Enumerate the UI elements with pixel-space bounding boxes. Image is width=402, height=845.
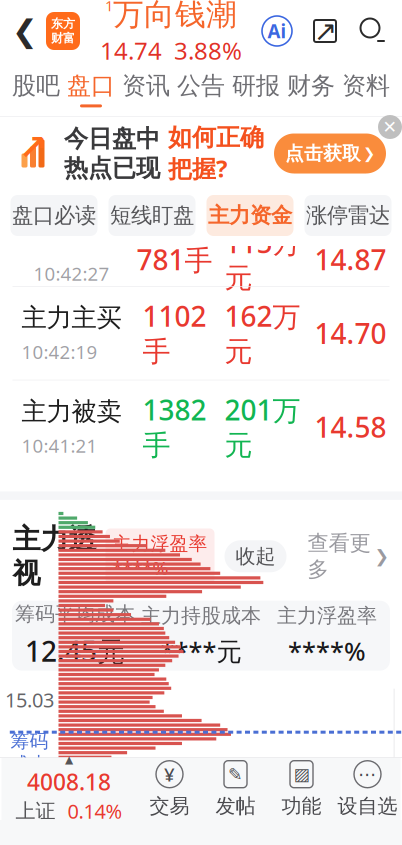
button[interactable]: 资讯 xyxy=(118,62,173,116)
button[interactable]: 东方财富 xyxy=(46,12,80,50)
button[interactable]: 收起 xyxy=(224,540,286,572)
staticText: 781手 xyxy=(136,241,212,278)
staticText: 主力浮盈率 xyxy=(277,604,377,628)
staticText: Ai xyxy=(267,19,286,43)
staticText: 15.03 xyxy=(5,686,54,713)
staticText: 研报 xyxy=(232,71,280,100)
staticText: ▲ xyxy=(65,754,73,766)
staticText: 115万元 xyxy=(224,224,300,295)
button[interactable]: 分享 xyxy=(310,16,340,46)
staticText: 主力持股成本 xyxy=(141,604,261,628)
staticText: 14.87 xyxy=(314,241,386,278)
staticText: 主力浮盈率****% xyxy=(112,532,207,580)
staticText: 资讯 xyxy=(122,71,170,100)
staticText: ❯ xyxy=(374,546,389,566)
staticText: 主力主买 xyxy=(21,302,121,333)
staticText: 筹码成本 xyxy=(10,730,48,776)
staticText: 盘口必读 xyxy=(12,202,96,229)
staticText: 1382手 xyxy=(142,391,206,463)
staticText: 东方 xyxy=(51,16,75,31)
staticText: 1102手 xyxy=(142,297,206,369)
staticText: 12.45元 xyxy=(25,632,125,670)
staticText: ****% xyxy=(288,634,366,668)
staticText: 10:41:21 xyxy=(21,433,97,458)
button[interactable]: 主力被卖 xyxy=(0,380,402,473)
staticText: 设自选 xyxy=(337,794,397,818)
staticText: 0.14% xyxy=(67,798,122,824)
staticText: 盘口 xyxy=(67,71,115,100)
staticText: ✎ xyxy=(228,764,243,784)
staticText: 短线盯盘 xyxy=(110,202,194,229)
staticText: ✕ xyxy=(382,117,397,137)
staticText: 资料 xyxy=(342,71,390,100)
button[interactable]: ▨ xyxy=(268,758,334,820)
staticText: 3.88% xyxy=(174,34,242,66)
button[interactable]: 财务 xyxy=(283,62,338,116)
staticText: 主力被卖 xyxy=(21,396,121,427)
button[interactable]: 公告 xyxy=(173,62,228,116)
button[interactable]: 资料 xyxy=(338,62,393,116)
button[interactable]: 主力资金 xyxy=(206,195,293,236)
staticText: 功能 xyxy=(281,794,321,818)
staticText: 今日盘中热点已现 xyxy=(64,124,160,183)
staticText: ⋯ xyxy=(358,764,377,785)
button[interactable]: 盘口 xyxy=(63,62,118,116)
staticText: 如何正确把握? xyxy=(168,123,264,184)
staticText: 1 xyxy=(105,0,113,15)
staticText: 14.70 xyxy=(314,315,386,352)
button[interactable]: 主力主买 xyxy=(0,287,402,380)
staticText: 14.58 xyxy=(314,408,386,445)
staticText: 10:42:27 xyxy=(33,261,109,286)
staticText: ❯ xyxy=(363,145,375,162)
button[interactable]: 返回 xyxy=(4,4,46,58)
staticText: 上证 xyxy=(15,799,55,823)
staticText: 162万元 xyxy=(224,297,300,369)
staticText: ▨ xyxy=(293,764,309,784)
button[interactable]: ▲ xyxy=(1,758,136,820)
staticText: ↗ xyxy=(18,128,47,167)
staticText: 主力透视 xyxy=(12,522,96,591)
staticText: 201万元 xyxy=(224,391,300,463)
staticText: 万向钱潮 xyxy=(113,0,237,33)
staticText: 财富 xyxy=(51,31,75,46)
button[interactable]: 短线盯盘 xyxy=(108,195,195,236)
staticText: 主力资金 xyxy=(208,202,292,229)
staticText: 发帖 xyxy=(215,794,255,818)
staticText: 10:42:19 xyxy=(21,339,97,364)
button[interactable]: ⋯ xyxy=(334,758,400,820)
staticText: 财务 xyxy=(287,71,335,100)
staticText: 7.23 xyxy=(10,792,48,819)
staticText: ****元 xyxy=(160,634,241,668)
button[interactable]: 搜索 xyxy=(358,16,388,46)
staticText: 查看更多 xyxy=(307,530,370,582)
button[interactable]: 查看更多 xyxy=(307,536,389,576)
button[interactable]: 盘口必读 xyxy=(10,195,97,236)
staticText: ¥ xyxy=(164,762,175,787)
staticText: 4008.18 xyxy=(27,767,111,797)
button[interactable]: ↗ xyxy=(0,117,402,190)
staticText: 涨停雷达 xyxy=(306,202,390,229)
button[interactable]: AI 助手 xyxy=(262,16,292,46)
button[interactable]: ✎ xyxy=(202,758,268,820)
staticText: 14.74 xyxy=(100,34,162,66)
staticText: ❮ xyxy=(12,14,38,48)
staticText: ↗ xyxy=(313,15,336,47)
staticText: 收起 xyxy=(235,544,275,569)
staticText: 公告 xyxy=(177,71,225,100)
button[interactable]: 研报 xyxy=(228,62,283,116)
button[interactable]: 股吧 xyxy=(8,62,63,116)
button[interactable]: 涨停雷达 xyxy=(304,195,391,236)
button[interactable]: ¥ xyxy=(136,758,202,820)
staticText: 筹码平均成本 xyxy=(15,602,135,626)
staticText: 点击获取 xyxy=(285,142,361,165)
staticText: 股吧 xyxy=(12,71,60,100)
staticText: 交易 xyxy=(149,794,189,818)
